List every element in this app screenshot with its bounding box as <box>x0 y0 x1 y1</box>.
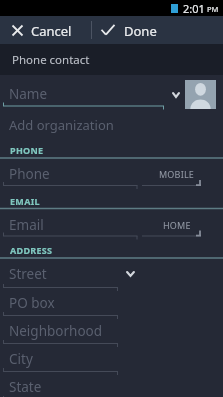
button[interactable]: Email <box>0 214 140 236</box>
button[interactable]: Expand street <box>121 263 140 284</box>
staticText: PHONE <box>10 144 44 156</box>
button[interactable]: Name <box>0 82 165 106</box>
button[interactable] <box>96 16 158 44</box>
staticText: Add organization <box>9 116 114 134</box>
button[interactable]: Neighborhood <box>0 320 120 342</box>
button[interactable]: MOBILE <box>151 162 203 186</box>
button[interactable]: Expand name <box>166 84 185 105</box>
staticText: ADDRESS <box>10 244 53 256</box>
staticText: Name <box>9 85 48 103</box>
button[interactable]: PO box <box>0 292 120 314</box>
staticText: Email <box>9 216 44 234</box>
button[interactable]: Add organization <box>0 114 223 136</box>
staticText: Cancel <box>31 22 72 40</box>
button[interactable] <box>4 16 82 44</box>
staticText: MOBILE <box>159 168 195 180</box>
staticText: 2:01 <box>183 1 205 16</box>
staticText: HOME <box>163 219 191 231</box>
staticText: Phone contact <box>12 52 90 68</box>
staticText: Street <box>9 265 47 283</box>
button[interactable]: Add photo <box>185 80 216 109</box>
button[interactable]: Phone contact <box>0 44 223 75</box>
staticText: Done <box>124 22 157 40</box>
staticText: State <box>9 378 42 396</box>
staticText: PM <box>207 4 219 14</box>
staticText: City <box>9 350 33 368</box>
button[interactable]: State <box>0 376 120 397</box>
staticText: Phone <box>9 165 50 183</box>
button[interactable]: City <box>0 348 120 370</box>
staticText: Neighborhood <box>9 322 103 340</box>
button[interactable]: Phone <box>0 163 140 185</box>
staticText: EMAIL <box>10 195 40 207</box>
staticText: PO box <box>9 294 55 312</box>
button[interactable]: Street <box>0 263 120 285</box>
button[interactable]: HOME <box>151 213 203 237</box>
